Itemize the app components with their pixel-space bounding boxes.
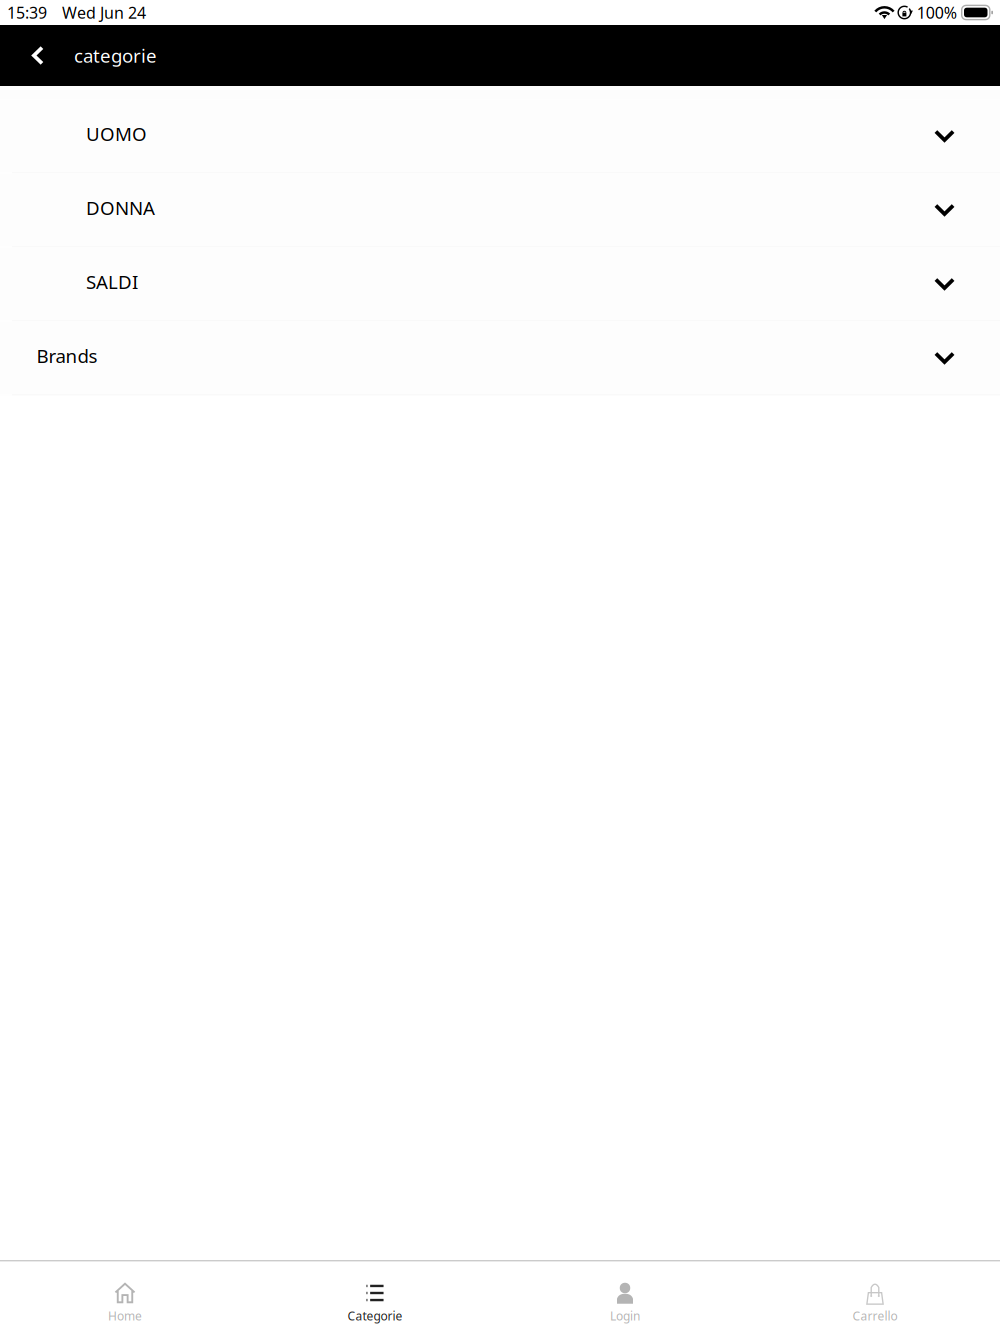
button[interactable]: Home [0,1260,250,1334]
button[interactable]: Brands [0,321,1000,394]
staticText: Login [610,1308,640,1324]
staticText: Carrello [852,1308,897,1324]
staticText: Categorie [347,1308,402,1324]
staticText: categorie [74,43,157,68]
button[interactable]: UOMO [0,99,1000,172]
button[interactable]: Carrello [750,1260,1000,1334]
button[interactable]: Login [500,1260,750,1334]
staticText: Brands [36,343,97,368]
button[interactable]: SALDI [0,247,1000,320]
button[interactable]: Categorie [250,1260,500,1334]
button[interactable]: Back [13,25,74,86]
staticText: 15:39 [7,2,47,23]
staticText: Wed Jun 24 [62,2,146,23]
staticText: Home [108,1308,142,1324]
staticText: 100% [917,2,957,23]
staticText: UOMO [86,121,147,146]
button[interactable]: DONNA [0,173,1000,246]
staticText: DONNA [86,195,155,220]
staticText: SALDI [86,269,138,294]
